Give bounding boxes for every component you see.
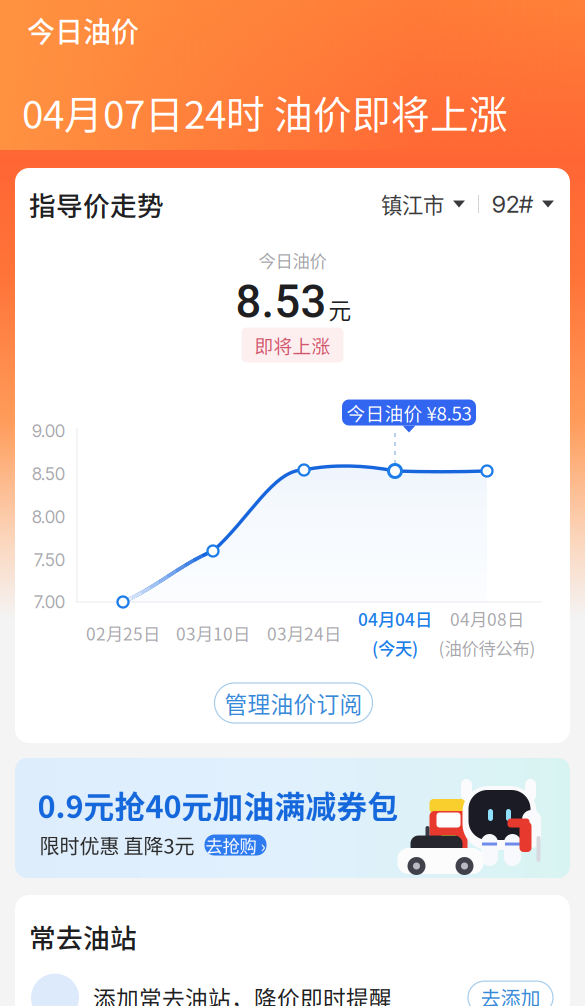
button[interactable]: 0.9元抢40元加油满减券包 (15, 758, 570, 878)
staticText: 04月04日 (358, 606, 432, 631)
staticText: 去抢购 › (205, 832, 265, 858)
staticText: 8.00 (32, 506, 65, 527)
staticText: 8.53 (235, 275, 326, 328)
staticText: 7.00 (34, 591, 65, 612)
staticText: 92# (492, 189, 533, 218)
staticText: 镇江市 (381, 189, 444, 219)
staticText: 去添加 (480, 983, 540, 1006)
staticText: 02月25日 (86, 620, 160, 646)
staticText: 03月10日 (176, 620, 250, 646)
staticText: 今日油价 (27, 10, 139, 50)
staticText: 9.00 (32, 420, 65, 441)
button[interactable]: 92# (492, 189, 554, 218)
staticText: 8.50 (32, 463, 65, 484)
staticText: 04月08日 (450, 606, 524, 631)
staticText: 03月24日 (267, 620, 341, 646)
staticText: 管理油价订阅 (224, 687, 362, 719)
staticText: 添加常去油站，降价即时提醒 (93, 981, 392, 1006)
staticText: 元 (328, 293, 351, 325)
staticText: 04月07日24时 油价即将上涨 (22, 84, 508, 140)
staticText: 限时优惠 直降3元 (39, 830, 194, 859)
staticText: 即将上涨 (254, 331, 330, 358)
button[interactable]: 管理油价订阅 (214, 683, 372, 723)
staticText: 今日油价 (258, 247, 326, 273)
button[interactable]: 去添加 (468, 981, 553, 1006)
staticText: (油价待公布) (438, 635, 535, 660)
staticText: 今日油价 ¥8.53 (346, 399, 471, 426)
staticText: 指导价走势 (29, 185, 164, 223)
staticText: 7.50 (34, 549, 65, 570)
staticText: (今天) (372, 635, 418, 660)
button[interactable]: 镇江市 (381, 189, 465, 219)
staticText: 常去油站 (29, 917, 137, 956)
staticText: 0.9元抢40元加油满减券包 (37, 783, 398, 827)
